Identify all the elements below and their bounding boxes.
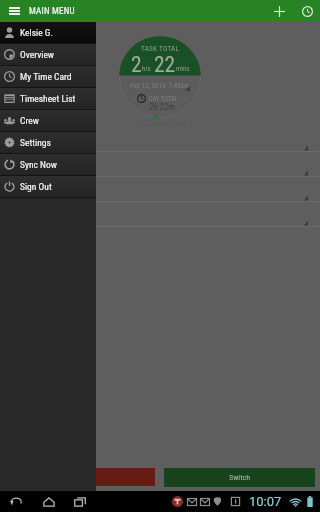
button[interactable]: Timesheet List (0, 88, 96, 109)
staticText: Kelsie G. (20, 27, 53, 38)
button[interactable]: Add (265, 0, 294, 22)
button[interactable]: Sign Out (0, 176, 96, 197)
staticText: DAY TOTAL (149, 95, 178, 103)
button[interactable]: Kelsie G. (0, 22, 96, 43)
staticText: Switch (229, 473, 251, 482)
button[interactable] (95, 468, 155, 486)
staticText: MAIN MENU (29, 6, 75, 17)
button[interactable] (0, 152, 320, 177)
staticText: Sign Out (20, 181, 52, 192)
staticText: Crew (20, 115, 39, 126)
staticText: 2h 22m (149, 102, 175, 112)
staticText: 10:07 (249, 494, 282, 509)
button[interactable]: Home (38, 491, 60, 512)
button[interactable]: Open navigation menu (0, 0, 29, 22)
staticText: 2 (131, 52, 142, 77)
staticText: Timesheet List (20, 93, 76, 104)
button[interactable]: Overview (0, 44, 96, 65)
button[interactable] (0, 177, 320, 202)
staticText: Settings (20, 137, 51, 148)
staticText: Feb 12, 2014 7:45am (130, 82, 190, 90)
button[interactable]: Switch (164, 468, 315, 487)
staticText: 22 (154, 52, 176, 77)
staticText: hrs (142, 65, 151, 73)
staticText: My Time Card (20, 71, 72, 82)
button[interactable]: Recent apps (69, 491, 91, 512)
button[interactable]: Clock in (294, 0, 320, 22)
button[interactable] (0, 127, 320, 152)
button[interactable]: Back (5, 491, 27, 512)
button[interactable]: Crew (0, 110, 96, 131)
button[interactable]: Sync Now (0, 154, 96, 175)
button[interactable] (0, 202, 320, 227)
button[interactable]: My Time Card (0, 66, 96, 87)
staticText: mins (176, 65, 190, 73)
button[interactable]: Settings (0, 132, 96, 153)
staticText: Overview (20, 49, 55, 60)
staticText: TASK TOTAL (141, 44, 180, 52)
staticText: Sync Now (20, 159, 57, 170)
